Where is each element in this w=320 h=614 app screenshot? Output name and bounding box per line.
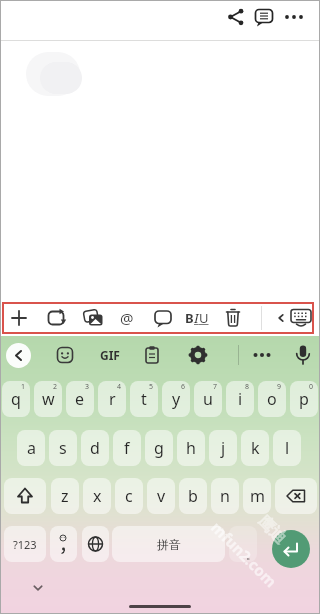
staticText: @ <box>120 308 134 328</box>
staticText: d <box>90 437 100 459</box>
button[interactable] <box>249 342 275 368</box>
button[interactable]: b <box>179 478 207 514</box>
staticText: j <box>221 437 226 459</box>
staticText: e <box>75 388 85 410</box>
staticText: l <box>285 437 290 459</box>
button[interactable]: l <box>273 430 301 466</box>
button[interactable]: GIF <box>93 343 127 367</box>
button[interactable]: m <box>243 478 271 514</box>
button[interactable]: j <box>209 430 237 466</box>
button[interactable]: d <box>81 430 109 466</box>
button[interactable]: o <box>258 381 286 417</box>
button[interactable] <box>290 342 316 368</box>
staticText: p <box>299 388 309 410</box>
staticText: a <box>27 437 36 459</box>
staticText: u <box>203 388 213 410</box>
button[interactable]: p <box>290 381 318 417</box>
button[interactable]: h <box>177 430 205 466</box>
staticText: GIF <box>100 347 120 363</box>
staticText: k <box>251 437 260 459</box>
staticText: 1 <box>21 382 26 392</box>
button[interactable] <box>139 342 165 368</box>
staticText: n <box>220 485 230 507</box>
staticText: I <box>194 309 199 327</box>
button[interactable] <box>223 4 249 30</box>
button[interactable]: v <box>147 478 175 514</box>
staticText: x <box>93 485 102 507</box>
button[interactable]: ?123 <box>4 526 46 562</box>
button[interactable] <box>80 305 106 331</box>
button[interactable] <box>275 478 317 514</box>
button[interactable]: 拼音 <box>112 526 225 562</box>
staticText: t <box>141 388 147 410</box>
staticText: c <box>125 485 133 507</box>
button[interactable] <box>52 342 78 368</box>
staticText: U <box>199 309 209 327</box>
staticText: b <box>188 485 198 507</box>
staticText: m <box>250 485 265 507</box>
button[interactable] <box>229 526 257 562</box>
button[interactable]: c <box>115 478 143 514</box>
staticText: 5 <box>149 382 154 392</box>
button[interactable] <box>185 342 211 368</box>
staticText: mfun2.com <box>207 517 281 591</box>
button[interactable]: k <box>241 430 269 466</box>
button[interactable]: e <box>66 381 94 417</box>
staticText: 8 <box>245 382 250 392</box>
staticText: h <box>186 437 196 459</box>
staticText: B <box>185 309 194 327</box>
button[interactable] <box>30 580 46 596</box>
button[interactable] <box>82 526 109 562</box>
button[interactable] <box>4 478 46 514</box>
staticText: 6 <box>181 382 186 392</box>
staticText: r <box>109 388 116 410</box>
staticText: ?123 <box>13 537 37 552</box>
button[interactable]: a <box>17 430 45 466</box>
button[interactable]: w <box>34 381 62 417</box>
button[interactable] <box>43 305 69 331</box>
staticText: y <box>172 388 181 410</box>
button[interactable]: y <box>162 381 190 417</box>
staticText: 鹰迪 <box>254 512 290 548</box>
staticText: f <box>124 437 130 459</box>
button[interactable] <box>50 526 77 562</box>
staticText: 拼音 <box>157 537 181 552</box>
staticText: o <box>267 388 277 410</box>
button[interactable] <box>281 4 307 30</box>
button[interactable] <box>6 305 32 331</box>
button[interactable] <box>150 305 176 331</box>
button[interactable]: x <box>83 478 111 514</box>
staticText: 9 <box>277 382 282 392</box>
button[interactable]: g <box>145 430 173 466</box>
button[interactable]: t <box>130 381 158 417</box>
staticText: i <box>238 388 243 410</box>
button[interactable] <box>274 311 288 325</box>
staticText: w <box>42 388 55 410</box>
button[interactable] <box>6 343 31 368</box>
staticText: 4 <box>117 382 122 392</box>
button[interactable]: i <box>226 381 254 417</box>
staticText: 3 <box>85 382 90 392</box>
button[interactable]: n <box>211 478 239 514</box>
button[interactable] <box>272 530 310 568</box>
button[interactable]: q <box>2 381 30 417</box>
button[interactable]: u <box>194 381 222 417</box>
button[interactable]: @ <box>115 306 139 330</box>
staticText: 。 <box>246 549 256 562</box>
button[interactable]: r <box>98 381 126 417</box>
button[interactable] <box>286 303 316 333</box>
button[interactable]: z <box>51 478 79 514</box>
button[interactable] <box>251 3 277 29</box>
button[interactable] <box>220 305 246 331</box>
button[interactable]: f <box>113 430 141 466</box>
staticText: 2 <box>53 382 58 392</box>
staticText: 7 <box>213 382 218 392</box>
button[interactable]: B <box>180 306 214 330</box>
staticText: v <box>157 485 166 507</box>
staticText: g <box>154 437 164 459</box>
staticText: s <box>59 437 67 459</box>
staticText: 0 <box>309 382 314 392</box>
staticText: q <box>11 388 21 410</box>
button[interactable]: s <box>49 430 77 466</box>
staticText: z <box>61 485 69 507</box>
